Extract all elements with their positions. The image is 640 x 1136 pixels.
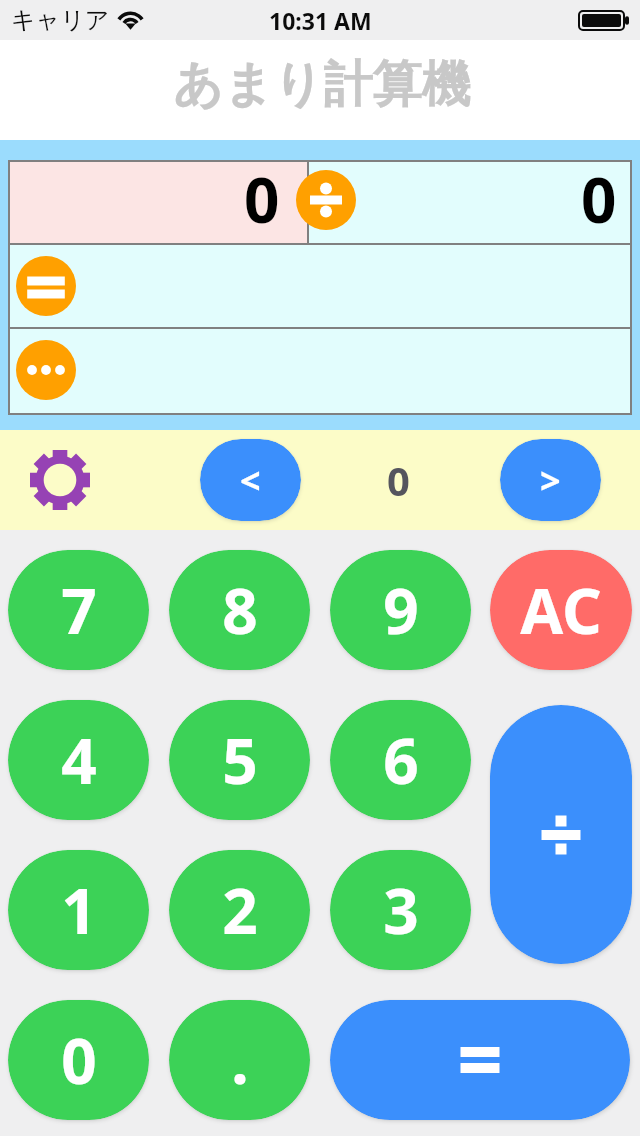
staticText: 7: [61, 568, 97, 652]
button[interactable]: Equals: [330, 1000, 630, 1120]
button[interactable]: Next: [500, 439, 601, 521]
button[interactable]: 7: [8, 550, 149, 670]
staticText: キャリア: [11, 5, 110, 35]
button[interactable]: 0: [309, 162, 630, 243]
button[interactable]: 1: [8, 850, 149, 970]
button[interactable]: 9: [330, 550, 471, 670]
button[interactable]: More: [16, 340, 76, 400]
staticText: <: [240, 456, 261, 505]
button[interactable]: AC: [490, 550, 632, 670]
button[interactable]: 5: [169, 700, 310, 820]
button[interactable]: Settings: [22, 442, 98, 518]
staticText: 0: [244, 157, 280, 238]
staticText: 1: [61, 868, 97, 952]
staticText: 10:31 AM: [269, 5, 372, 36]
button[interactable]: 2: [169, 850, 310, 970]
button[interactable]: Divide: [296, 170, 356, 230]
button[interactable]: Quotient result: [10, 245, 630, 327]
button[interactable]: Divide: [490, 705, 632, 964]
button[interactable]: 0: [10, 162, 307, 243]
button[interactable]: Previous: [200, 439, 301, 521]
staticText: 9: [383, 568, 419, 652]
staticText: 0: [387, 453, 410, 507]
button[interactable]: 6: [330, 700, 471, 820]
staticText: 0: [61, 1018, 97, 1102]
staticText: 6: [383, 718, 419, 802]
staticText: 2: [222, 868, 258, 952]
staticText: 0: [581, 157, 617, 238]
button[interactable]: 4: [8, 700, 149, 820]
staticText: 4: [61, 718, 97, 802]
button[interactable]: Remainder result: [10, 329, 630, 413]
staticText: 5: [222, 718, 258, 802]
staticText: 3: [383, 868, 419, 952]
button[interactable]: .: [169, 1000, 310, 1120]
staticText: .: [231, 1018, 249, 1102]
button[interactable]: Equals: [16, 256, 76, 316]
staticText: >: [540, 456, 561, 505]
button[interactable]: 3: [330, 850, 471, 970]
button[interactable]: 8: [169, 550, 310, 670]
button[interactable]: 0: [8, 1000, 149, 1120]
staticText: あまり計算機: [173, 54, 471, 116]
staticText: 8: [222, 568, 258, 652]
staticText: AC: [520, 568, 602, 652]
